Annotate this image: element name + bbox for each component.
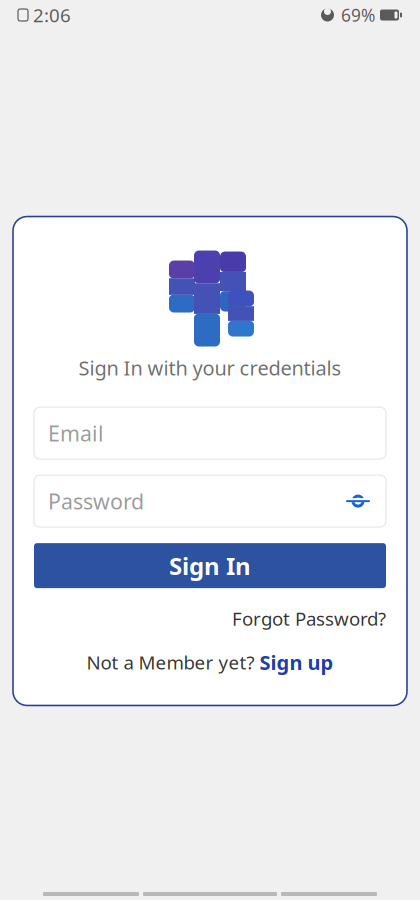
staticText: Forgot Password?	[232, 606, 386, 631]
staticText: Sign up	[259, 649, 333, 675]
button[interactable]: Email	[34, 407, 386, 459]
staticText: Sign In with your credentials	[78, 354, 341, 381]
staticText: 2:06	[33, 3, 71, 27]
staticText: Email	[48, 419, 104, 447]
staticText: Password	[48, 487, 144, 515]
staticText: 69%	[341, 3, 375, 26]
staticText: Not a Member yet?	[86, 650, 254, 675]
button[interactable]: Forgot Password?	[232, 606, 386, 631]
staticText: Sign In	[169, 550, 251, 582]
button[interactable]: Sign In	[34, 543, 386, 588]
button[interactable]: Show password	[344, 490, 372, 512]
button[interactable]: Password	[34, 475, 386, 527]
button[interactable]: Not a Member yet?	[86, 649, 333, 675]
